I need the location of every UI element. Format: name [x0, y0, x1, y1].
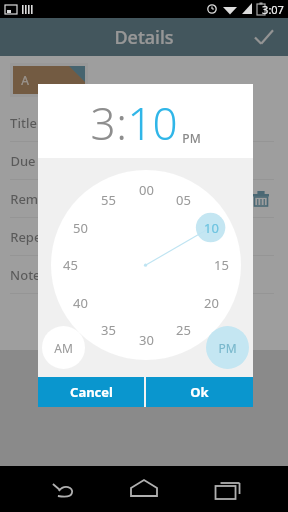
button[interactable]: 20 — [198, 294, 224, 312]
staticText: 55 — [101, 191, 116, 209]
staticText: 15 — [214, 256, 229, 274]
staticText: AM — [54, 340, 73, 356]
button[interactable]: Title — [0, 104, 288, 142]
staticText: Ok — [190, 383, 209, 401]
button[interactable]: 05 — [170, 191, 196, 209]
button[interactable]: 10 — [198, 219, 224, 237]
staticText: 50 — [73, 219, 88, 237]
staticText: Due — [10, 152, 36, 170]
button[interactable]: 50 — [67, 219, 93, 237]
staticText: A — [21, 72, 29, 88]
button[interactable]: 40 — [67, 294, 93, 312]
button[interactable]: 25 — [170, 321, 196, 339]
button[interactable]: Due — [0, 142, 288, 180]
button[interactable]: Done — [254, 27, 274, 47]
staticText: 3 — [90, 93, 116, 153]
button[interactable]: Cancel — [38, 377, 144, 407]
button[interactable]: 55 — [95, 191, 121, 209]
button[interactable]: 10 — [127, 93, 178, 153]
button[interactable]: 35 — [95, 321, 121, 339]
button[interactable]: 00 — [133, 181, 159, 199]
staticText: Repeat — [10, 228, 54, 246]
staticText: 45 — [63, 256, 78, 274]
staticText: 25 — [176, 321, 191, 339]
button[interactable]: Reminder — [0, 180, 288, 218]
staticText: 3:07 — [262, 2, 284, 17]
button[interactable]: Notes — [0, 256, 288, 294]
button[interactable]: Repeat — [0, 218, 288, 256]
staticText: Cancel — [70, 383, 113, 401]
staticText: PM — [218, 340, 237, 356]
button[interactable]: Recents — [192, 466, 288, 512]
button[interactable]: 30 — [133, 331, 159, 349]
staticText: 00 — [139, 181, 154, 199]
staticText: Title — [10, 114, 37, 132]
button[interactable]: AM — [42, 326, 85, 369]
staticText: 40 — [73, 294, 88, 312]
button[interactable]: 3 — [90, 93, 116, 153]
button[interactable]: A — [13, 66, 85, 94]
staticText: Reminder — [10, 190, 71, 208]
button[interactable]: Ok — [146, 377, 253, 407]
staticText: 10 — [204, 219, 219, 237]
staticText: Details — [114, 25, 174, 50]
button[interactable]: 15 — [208, 256, 234, 274]
button[interactable]: Back — [0, 466, 96, 512]
button[interactable]: PM — [206, 326, 249, 369]
staticText: 20 — [204, 294, 219, 312]
button[interactable]: Home — [96, 466, 192, 512]
button[interactable]: 45 — [57, 256, 83, 274]
staticText: Notes — [10, 266, 47, 284]
staticText: 10 — [127, 93, 178, 153]
staticText: PM — [182, 130, 201, 146]
staticText: 30 — [139, 331, 154, 349]
staticText: : — [116, 93, 127, 153]
staticText: 05 — [176, 191, 191, 209]
staticText: 35 — [101, 321, 116, 339]
